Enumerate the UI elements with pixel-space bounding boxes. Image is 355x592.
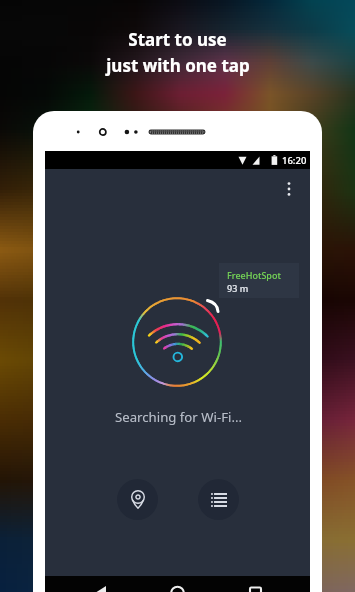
staticText: just with one tap [106,54,250,77]
staticText: Start to use [128,28,227,51]
staticText: 16:20 [282,154,307,167]
staticText: 93 m [227,282,249,294]
staticText: FreeHotSpot [227,269,281,281]
staticText: Searching for Wi-Fi... [115,408,242,426]
button[interactable]: List [198,479,239,520]
button[interactable]: Map [117,479,158,520]
button[interactable]: FreeHotSpot [219,263,299,298]
button[interactable]: More options [273,173,305,205]
